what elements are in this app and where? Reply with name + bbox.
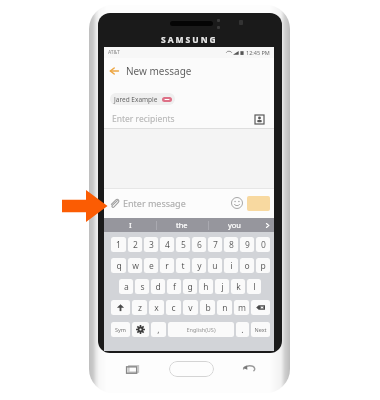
- staticText: New message: [126, 64, 192, 78]
- button[interactable]: g: [183, 279, 197, 294]
- staticText: u: [212, 260, 218, 272]
- staticText: 0: [261, 239, 266, 251]
- staticText: you: [228, 220, 241, 230]
- button[interactable]: you: [208, 218, 260, 232]
- staticText: f: [173, 281, 176, 293]
- staticText: g: [187, 281, 193, 293]
- button[interactable]: w: [128, 258, 142, 273]
- button[interactable]: I: [104, 218, 156, 232]
- button[interactable]: Home: [169, 361, 214, 377]
- button[interactable]: s: [135, 279, 149, 294]
- button[interactable]: Send: [247, 196, 270, 211]
- button[interactable]: c: [166, 300, 181, 315]
- button[interactable]: the: [156, 218, 208, 232]
- staticText: 2: [133, 239, 138, 251]
- staticText: r: [165, 260, 169, 272]
- button[interactable]: v: [183, 300, 198, 315]
- staticText: .: [241, 324, 244, 336]
- button[interactable]: n: [217, 300, 232, 315]
- button[interactable]: Settings: [132, 322, 149, 337]
- button[interactable]: z: [132, 300, 147, 315]
- button[interactable]: Jared Example: [110, 93, 175, 105]
- staticText: z: [138, 302, 142, 314]
- button[interactable]: More suggestions: [260, 218, 274, 232]
- button[interactable]: Delete: [251, 300, 270, 315]
- button[interactable]: y: [192, 258, 206, 273]
- button[interactable]: 3: [144, 237, 158, 252]
- button[interactable]: k: [231, 279, 245, 294]
- button[interactable]: 0: [256, 237, 270, 252]
- button[interactable]: Sym: [111, 322, 130, 337]
- button[interactable]: a: [119, 279, 133, 294]
- staticText: q: [116, 260, 122, 272]
- button[interactable]: Insert emoji: [231, 197, 243, 209]
- button[interactable]: 9: [240, 237, 254, 252]
- staticText: Enter recipients: [112, 113, 175, 125]
- button[interactable]: u: [208, 258, 222, 273]
- button[interactable]: f: [167, 279, 181, 294]
- button[interactable]: i: [224, 258, 238, 273]
- button[interactable]: x: [149, 300, 164, 315]
- staticText: i: [230, 260, 233, 272]
- staticText: m: [238, 302, 246, 314]
- button[interactable]: .: [236, 322, 249, 337]
- staticText: t: [181, 260, 185, 272]
- staticText: d: [155, 281, 161, 293]
- button[interactable]: Add from contacts: [255, 115, 264, 124]
- button[interactable]: English(US): [168, 322, 234, 337]
- staticText: Next: [254, 326, 267, 333]
- button[interactable]: Navigate up: [109, 66, 119, 76]
- staticText: k: [236, 281, 241, 293]
- staticText: 6: [197, 239, 202, 251]
- button[interactable]: Recents: [125, 363, 141, 379]
- staticText: w: [132, 260, 139, 272]
- button[interactable]: r: [160, 258, 174, 273]
- button[interactable]: 8: [224, 237, 238, 252]
- staticText: I: [129, 220, 132, 230]
- staticText: c: [171, 302, 176, 314]
- button[interactable]: m: [234, 300, 249, 315]
- staticText: 3: [149, 239, 154, 251]
- button[interactable]: e: [144, 258, 158, 273]
- button[interactable]: ,: [151, 322, 166, 337]
- staticText: Sym: [115, 326, 126, 333]
- button[interactable]: o: [240, 258, 254, 273]
- staticText: Jared Example: [114, 95, 158, 104]
- staticText: y: [197, 260, 202, 272]
- button[interactable]: 6: [192, 237, 206, 252]
- button[interactable]: t: [176, 258, 190, 273]
- button[interactable]: j: [215, 279, 229, 294]
- button[interactable]: d: [151, 279, 165, 294]
- button[interactable]: q: [111, 258, 126, 273]
- staticText: s: [140, 281, 145, 293]
- staticText: ,: [157, 324, 160, 336]
- staticText: 5: [181, 239, 186, 251]
- staticText: j: [221, 281, 224, 293]
- button[interactable]: 4: [160, 237, 174, 252]
- staticText: Enter message: [123, 197, 186, 209]
- button[interactable]: Shift: [111, 300, 130, 315]
- button[interactable]: Back: [241, 362, 257, 378]
- button[interactable]: h: [199, 279, 213, 294]
- button[interactable]: Next: [251, 322, 270, 337]
- staticText: e: [149, 260, 154, 272]
- button[interactable]: 5: [176, 237, 190, 252]
- button[interactable]: 2: [128, 237, 142, 252]
- staticText: v: [188, 302, 193, 314]
- staticText: x: [154, 302, 159, 314]
- staticText: the: [176, 220, 188, 230]
- staticText: h: [203, 281, 209, 293]
- button[interactable]: Attach: [108, 197, 120, 209]
- staticText: English(US): [186, 326, 216, 333]
- button[interactable]: l: [247, 279, 261, 294]
- staticText: 1: [116, 239, 121, 251]
- button[interactable]: b: [200, 300, 215, 315]
- staticText: AT&T: [108, 49, 120, 56]
- button[interactable]: 1: [111, 237, 126, 252]
- staticText: 8: [229, 239, 234, 251]
- staticText: l: [253, 281, 256, 293]
- button[interactable]: 7: [208, 237, 222, 252]
- button[interactable]: p: [256, 258, 270, 273]
- staticText: 9: [245, 239, 250, 251]
- staticText: 12:45 PM: [246, 49, 270, 56]
